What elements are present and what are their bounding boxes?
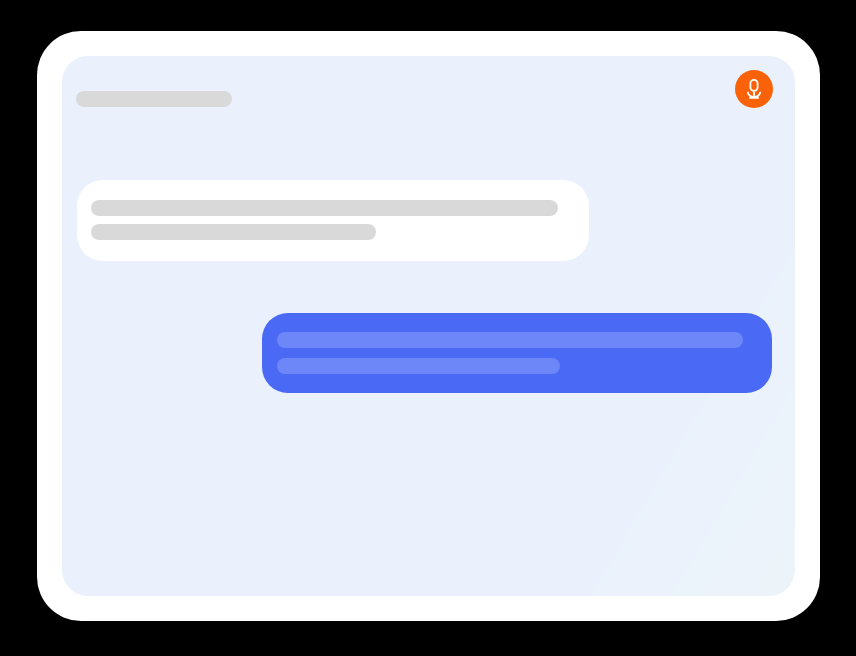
button[interactable]: Voice input [735,70,773,108]
button[interactable] [77,180,589,261]
button[interactable] [262,313,772,393]
